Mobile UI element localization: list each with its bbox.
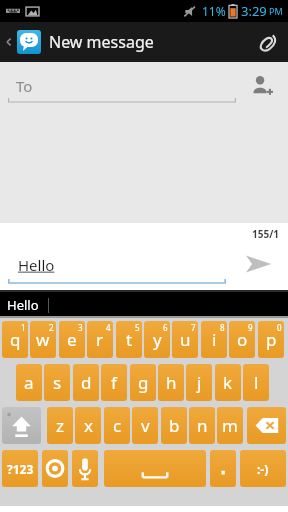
staticText: 5 xyxy=(135,322,140,333)
staticText: v xyxy=(141,414,150,437)
staticText: p xyxy=(266,328,277,351)
staticText: d xyxy=(81,371,92,394)
button[interactable]: Settings xyxy=(42,450,68,487)
button[interactable]: Voice input xyxy=(72,450,98,487)
staticText: 11% xyxy=(202,3,226,19)
staticText: y xyxy=(153,328,162,351)
button[interactable]: f xyxy=(101,364,127,401)
button[interactable]: Backspace xyxy=(247,407,286,444)
staticText: 9 xyxy=(248,322,253,333)
staticText: w xyxy=(36,328,50,351)
staticText: 8 xyxy=(220,322,225,333)
staticText: Hello xyxy=(18,255,55,275)
staticText: x xyxy=(84,414,93,437)
staticText: k xyxy=(223,371,233,394)
staticText: 1 xyxy=(21,322,26,333)
staticText: 4 xyxy=(106,322,111,333)
button[interactable]: Add recipient xyxy=(242,66,282,106)
button[interactable]: Shift xyxy=(2,407,41,444)
button[interactable]: Space xyxy=(104,450,206,487)
button[interactable]: To xyxy=(8,69,236,103)
staticText: ?123 xyxy=(7,461,34,477)
button[interactable]: b xyxy=(161,407,187,444)
staticText: i xyxy=(212,328,217,351)
button[interactable]: Attach xyxy=(248,22,288,62)
button[interactable]: z xyxy=(47,407,73,444)
button[interactable]: e xyxy=(59,321,85,358)
staticText: f xyxy=(111,371,117,394)
button[interactable]: New message xyxy=(0,30,154,54)
staticText: 3 xyxy=(78,322,83,333)
staticText: e xyxy=(67,328,77,351)
button[interactable]: k xyxy=(215,364,241,401)
staticText: 3:29 xyxy=(241,2,267,20)
staticText: l xyxy=(254,371,259,394)
staticText: u xyxy=(180,328,191,351)
staticText: g xyxy=(138,371,149,394)
button[interactable]: u xyxy=(172,321,198,358)
staticText: o xyxy=(237,328,248,351)
staticText: q xyxy=(10,328,21,351)
staticText: a xyxy=(24,371,34,394)
button[interactable]: ?123 xyxy=(2,450,38,487)
staticText: 6 xyxy=(163,322,168,333)
button[interactable]: t xyxy=(116,321,142,358)
button[interactable]: o xyxy=(229,321,255,358)
staticText: n xyxy=(197,414,208,437)
button[interactable]: w xyxy=(30,321,56,358)
staticText: h xyxy=(166,371,177,394)
button[interactable]: n xyxy=(189,407,215,444)
button[interactable]: y xyxy=(144,321,170,358)
staticText: j xyxy=(197,371,202,394)
button[interactable]: p xyxy=(258,321,284,358)
staticText: Hello xyxy=(7,296,39,314)
staticText: t xyxy=(126,328,133,351)
button[interactable]: q xyxy=(2,321,28,358)
staticText: New message xyxy=(49,31,154,53)
button[interactable]: l xyxy=(243,364,269,401)
staticText: b xyxy=(169,414,180,437)
button[interactable]: i xyxy=(201,321,227,358)
staticText: m xyxy=(222,414,238,437)
staticText: 155/1 xyxy=(252,227,280,241)
staticText: s xyxy=(53,371,62,394)
button[interactable]: x xyxy=(75,407,101,444)
button[interactable]: Send xyxy=(234,240,282,288)
staticText: z xyxy=(56,414,64,437)
button[interactable]: Period xyxy=(210,450,236,487)
staticText: 2 xyxy=(49,322,54,333)
button[interactable]: r xyxy=(87,321,113,358)
staticText: To xyxy=(16,76,33,96)
button[interactable]: v xyxy=(132,407,158,444)
button[interactable]: m xyxy=(217,407,243,444)
staticText: r xyxy=(96,328,104,351)
staticText: c xyxy=(113,414,122,437)
button[interactable]: s xyxy=(44,364,70,401)
button[interactable]: g xyxy=(130,364,156,401)
button[interactable]: Hello xyxy=(8,246,226,284)
button[interactable]: d xyxy=(73,364,99,401)
button[interactable]: a xyxy=(16,364,42,401)
button[interactable]: :-) xyxy=(240,450,286,487)
button[interactable]: c xyxy=(104,407,130,444)
staticText: PM xyxy=(269,5,283,17)
staticText: :-) xyxy=(257,461,269,477)
staticText: 7 xyxy=(191,322,196,333)
button[interactable]: j xyxy=(186,364,212,401)
staticText: 0 xyxy=(277,322,282,333)
button[interactable]: h xyxy=(158,364,184,401)
